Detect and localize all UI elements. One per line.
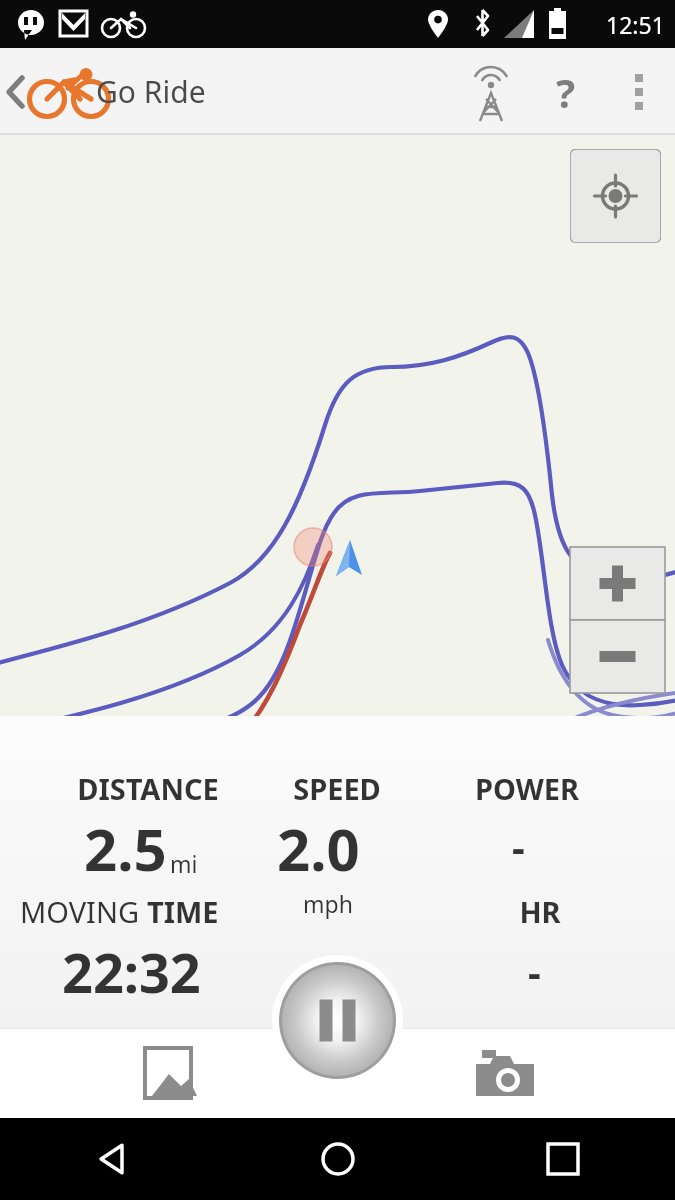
button[interactable]: More options xyxy=(605,48,675,135)
staticText: HR xyxy=(420,892,660,931)
staticText: - xyxy=(512,819,525,873)
staticText: POWER xyxy=(407,769,647,808)
button[interactable]: Gallery xyxy=(118,1038,218,1108)
button[interactable]: Zoom out xyxy=(570,620,665,693)
button[interactable]: Camera xyxy=(455,1038,555,1108)
button[interactable]: My location xyxy=(0,135,675,716)
staticText: 12:51 xyxy=(606,9,665,40)
button[interactable]: Go Ride xyxy=(0,48,206,135)
button[interactable]: Recent apps xyxy=(450,1118,675,1200)
staticText: 2.0 xyxy=(277,809,360,888)
staticText: mi xyxy=(170,848,198,879)
button[interactable]: Back xyxy=(0,1118,225,1200)
button[interactable]: Help xyxy=(527,48,605,135)
staticText: mph xyxy=(303,888,353,919)
button[interactable]: Pause ride xyxy=(272,955,403,1086)
button[interactable]: Live tracking xyxy=(455,48,527,135)
staticText: TIME xyxy=(147,892,219,931)
button[interactable]: My location xyxy=(570,149,661,243)
button[interactable]: Zoom in xyxy=(570,547,665,620)
staticText: ? xyxy=(556,65,576,119)
staticText: MOVING xyxy=(20,892,147,931)
staticText: 2.5 xyxy=(84,809,167,888)
staticText: - xyxy=(528,944,541,998)
staticText: 22:32 xyxy=(62,935,201,1009)
staticText: SPEED xyxy=(217,769,457,808)
staticText: Go Ride xyxy=(96,71,206,112)
staticText: DISTANCE xyxy=(28,769,268,808)
button[interactable]: Home xyxy=(225,1118,450,1200)
